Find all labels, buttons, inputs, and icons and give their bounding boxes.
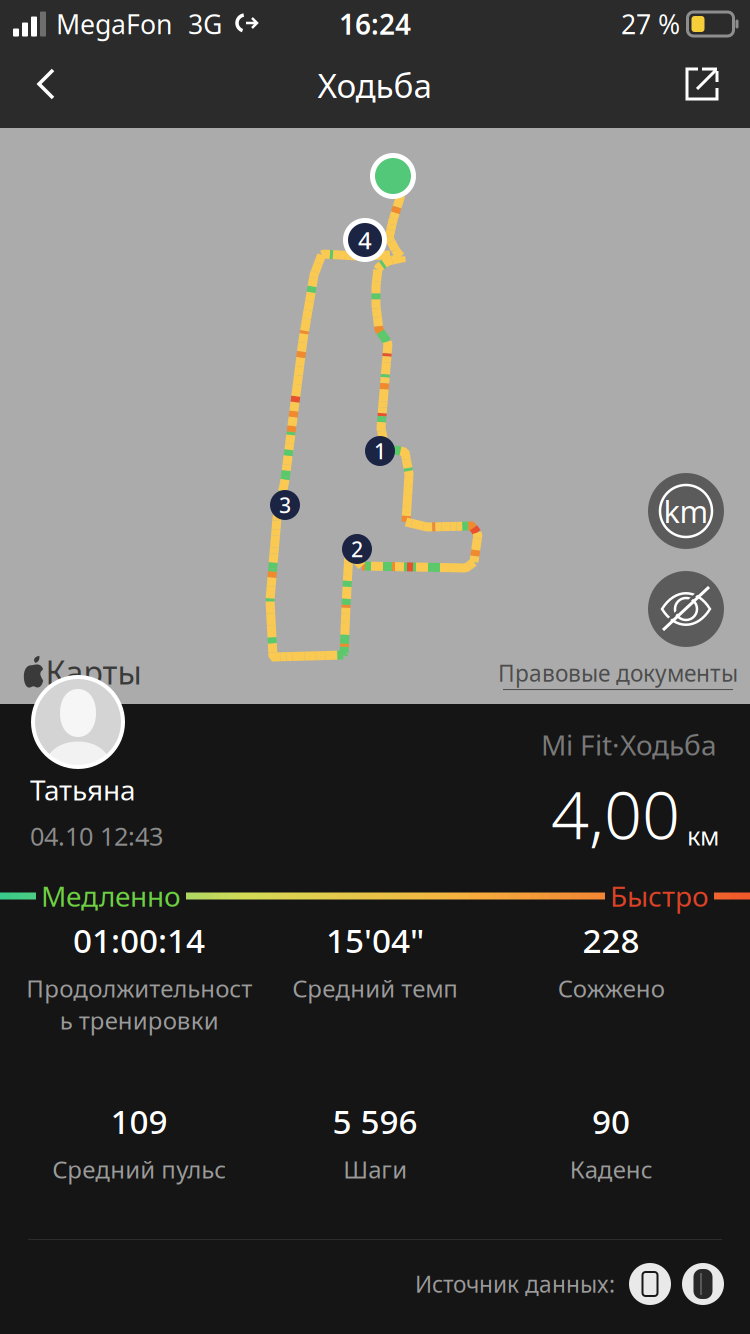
staticText: 228 bbox=[582, 918, 639, 962]
staticText: Быстро bbox=[610, 877, 709, 915]
staticText: 16:24 bbox=[339, 5, 411, 43]
staticText: 15'04" bbox=[326, 918, 424, 962]
staticText: 2 bbox=[351, 535, 363, 563]
staticText: Шаги bbox=[343, 1153, 407, 1185]
staticText: Продолжительност ь тренировки bbox=[26, 972, 252, 1036]
staticText: Сожжено bbox=[557, 972, 664, 1004]
staticText: 01:00:14 bbox=[73, 918, 205, 962]
button[interactable]: Units bbox=[648, 473, 724, 549]
staticText: Ходьба bbox=[317, 63, 432, 107]
staticText: 4,00 bbox=[551, 769, 680, 857]
staticText: 04.10 12:43 bbox=[30, 819, 163, 853]
staticText: km bbox=[663, 491, 708, 531]
staticText: Татьяна bbox=[30, 771, 136, 808]
button[interactable]: Hide route bbox=[648, 571, 724, 647]
staticText: Карты bbox=[45, 651, 141, 693]
staticText: км bbox=[687, 819, 719, 852]
staticText: Медленно bbox=[41, 877, 181, 915]
button[interactable]: Back bbox=[10, 48, 82, 128]
staticText: Средний темп bbox=[292, 972, 458, 1004]
staticText: Правовые документы bbox=[498, 658, 738, 688]
staticText: 109 bbox=[110, 1099, 167, 1143]
staticText: MegaFon bbox=[56, 6, 172, 42]
button[interactable]: Share bbox=[666, 48, 738, 128]
staticText: 4 bbox=[358, 224, 372, 256]
staticText: Источник данных: bbox=[415, 1269, 615, 1299]
staticText: 27 % bbox=[621, 6, 680, 42]
staticText: Каденс bbox=[569, 1153, 652, 1185]
staticText: 90 bbox=[592, 1099, 630, 1143]
staticText: 3 bbox=[279, 491, 291, 519]
staticText: 1 bbox=[374, 437, 386, 465]
staticText: Средний пульс bbox=[52, 1153, 226, 1185]
staticText: 3G bbox=[188, 6, 222, 42]
staticText: Mi Fit·Ходьба bbox=[541, 726, 717, 763]
staticText: 5 596 bbox=[332, 1099, 417, 1143]
